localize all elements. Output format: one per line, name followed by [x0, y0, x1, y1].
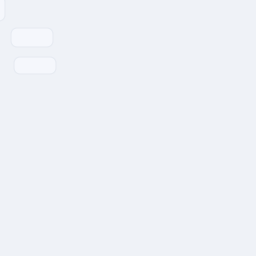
button[interactable]: Card 2 — [11, 28, 53, 47]
button[interactable]: Card 1 — [0, 0, 5, 21]
button[interactable]: Card 3 — [14, 57, 56, 74]
